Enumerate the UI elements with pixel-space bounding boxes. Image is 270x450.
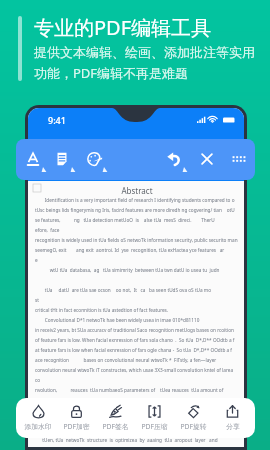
staticText: 分享 <box>226 422 240 431</box>
button[interactable]: Note <box>52 149 72 169</box>
staticText: 9:41 <box>48 114 66 126</box>
staticText: 添加水印 <box>24 422 52 431</box>
button[interactable]: Text <box>23 149 43 169</box>
button[interactable]: Close <box>197 149 217 169</box>
staticText: 提供文本编辑、绘画、添加批注等实用功能，PDF编辑不再是难题 <box>34 44 256 82</box>
button[interactable]: 分享 <box>213 398 252 438</box>
staticText: PDF压缩 <box>141 422 168 431</box>
staticText: Abstract <box>35 185 239 196</box>
button[interactable]: PDF旋转 <box>174 398 213 438</box>
staticText: Identification is a very important field… <box>35 197 239 447</box>
staticText: PDF旋转 <box>180 422 207 431</box>
button[interactable]: Undo <box>164 149 184 169</box>
staticText: PDF加密 <box>63 422 90 431</box>
button[interactable]: PDF加密 <box>57 398 96 438</box>
button[interactable]: More <box>229 149 249 169</box>
button[interactable]: PDF签名 <box>96 398 135 438</box>
button[interactable]: Draw <box>84 149 104 169</box>
button[interactable]: PDF压缩 <box>135 398 174 438</box>
staticText: PDF签名 <box>102 422 129 431</box>
staticText: 专业的PDF编辑工具 <box>34 14 212 41</box>
button[interactable]: 添加水印 <box>19 398 57 438</box>
